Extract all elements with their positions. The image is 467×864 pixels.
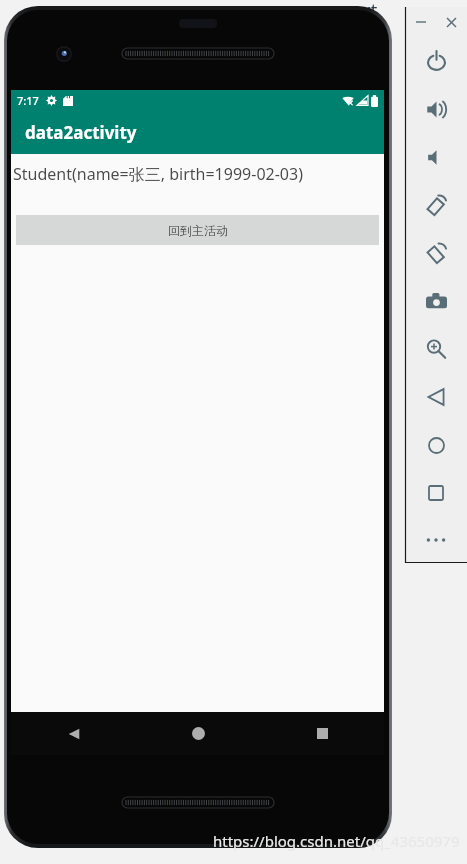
button[interactable]: Screenshot xyxy=(405,277,467,325)
button[interactable]: Home xyxy=(405,421,467,469)
button[interactable]: Recent apps xyxy=(260,712,384,755)
button[interactable]: Rotate right xyxy=(405,229,467,277)
button[interactable]: Overview xyxy=(405,469,467,517)
button[interactable]: Back xyxy=(405,373,467,421)
staticText: art xyxy=(352,0,378,24)
staticText: 7:17 xyxy=(17,93,39,108)
staticText: data2activity xyxy=(25,121,137,144)
button[interactable]: Home xyxy=(136,712,260,755)
staticText: 回到主活动 xyxy=(168,223,228,238)
button[interactable]: More xyxy=(405,517,467,563)
button[interactable]: Power xyxy=(405,37,467,85)
staticText: https://blog.csdn.net/qq_43650979 xyxy=(213,831,460,851)
button[interactable]: Volume up xyxy=(405,85,467,133)
button[interactable]: 回到主活动 xyxy=(16,215,379,245)
button[interactable]: Zoom xyxy=(405,325,467,373)
button[interactable]: Back xyxy=(11,712,136,755)
button[interactable]: Minimize xyxy=(405,7,436,37)
button[interactable]: Rotate left xyxy=(405,181,467,229)
button[interactable]: Close xyxy=(436,7,467,37)
button[interactable]: Volume down xyxy=(405,133,467,181)
staticText: Student(name=张三, birth=1999-02-03) xyxy=(13,163,303,185)
